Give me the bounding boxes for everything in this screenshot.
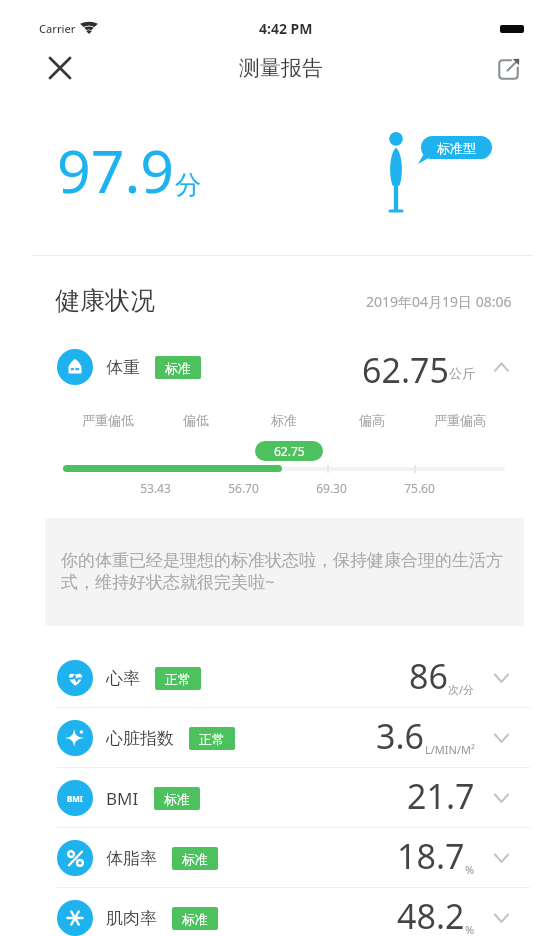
staticText: 53.43 xyxy=(140,480,171,496)
button[interactable]: 心脏指数 xyxy=(0,708,550,767)
button[interactable]: 体重 xyxy=(0,349,550,385)
staticText: 标准 xyxy=(182,911,208,927)
staticText: 69.30 xyxy=(316,480,347,496)
staticText: 偏低 xyxy=(183,412,209,428)
staticText: 标准 xyxy=(165,360,191,376)
button[interactable]: 体脂率 xyxy=(0,828,550,887)
staticText: 75.60 xyxy=(404,480,435,496)
staticText: 体脂率 xyxy=(106,848,157,869)
staticText: 2019年04月19日 08:06 xyxy=(366,292,512,311)
button[interactable]: 心率 xyxy=(0,648,550,707)
staticText: 心脏指数 xyxy=(106,728,174,749)
staticText: 公斤 xyxy=(449,365,475,381)
staticText: 48.2 xyxy=(397,893,465,936)
staticText: 心率 xyxy=(106,668,140,689)
staticText: 标准 xyxy=(164,791,190,807)
staticText: 严重偏低 xyxy=(82,412,134,428)
staticText: 86 xyxy=(409,653,448,699)
staticText: 3.6 xyxy=(376,713,425,759)
staticText: 测量报告 xyxy=(239,55,323,81)
staticText: 62.75 xyxy=(274,443,305,459)
staticText: 56.70 xyxy=(228,480,259,496)
staticText: L/MIN/M² xyxy=(425,742,475,757)
staticText: % xyxy=(465,862,475,877)
staticText: 标准型 xyxy=(437,140,476,156)
staticText: 正常 xyxy=(199,731,225,747)
staticText: 严重偏高 xyxy=(434,412,486,428)
staticText: 健康状况 xyxy=(55,285,155,316)
staticText: 18.7 xyxy=(397,833,465,879)
staticText: 4:42 PM xyxy=(259,19,313,38)
staticText: 标准 xyxy=(182,851,208,867)
staticText: 62.75 xyxy=(362,347,449,383)
staticText: 偏高 xyxy=(359,412,385,428)
staticText: 分 xyxy=(175,169,201,202)
button[interactable]: Close xyxy=(44,52,76,84)
staticText: BMI xyxy=(67,793,83,804)
staticText: 体重 xyxy=(106,357,140,378)
button[interactable]: Share xyxy=(490,51,524,85)
button[interactable]: BMI xyxy=(0,768,550,827)
staticText: 肌肉率 xyxy=(106,908,157,929)
staticText: 你的体重已经是理想的标准状态啦，保持健康合理的生活方式，维持好状态就很完美啦~ xyxy=(61,550,503,594)
staticText: Carrier xyxy=(39,21,76,36)
staticText: 次/分 xyxy=(448,682,475,697)
staticText: % xyxy=(465,922,475,936)
staticText: BMI xyxy=(106,787,139,810)
staticText: 标准 xyxy=(271,412,297,428)
button[interactable]: 肌肉率 xyxy=(0,888,550,936)
staticText: 97.9 xyxy=(57,130,175,210)
staticText: 正常 xyxy=(165,671,191,687)
staticText: 21.7 xyxy=(407,773,475,819)
